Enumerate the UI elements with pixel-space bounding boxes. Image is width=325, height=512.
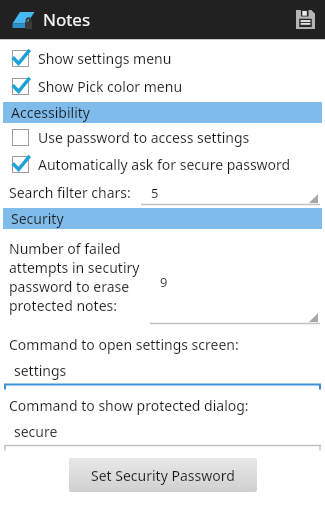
staticText: Number of failed attempts in secutiry pa… xyxy=(9,239,150,315)
button[interactable]: Save xyxy=(285,0,325,39)
staticText: Accessibility xyxy=(11,103,90,122)
staticText: Show settings menu xyxy=(38,49,172,68)
staticText: Command to show protected dialog: xyxy=(9,396,249,415)
button[interactable]: Show Pick color menu xyxy=(0,74,325,98)
button[interactable]: Dropdown, value 9 xyxy=(150,239,320,325)
staticText: Set Security Password xyxy=(91,466,235,485)
staticText: Search filter chars: xyxy=(9,183,131,202)
staticText: 9 xyxy=(160,273,168,291)
staticText: Command to open settings screen: xyxy=(9,335,239,354)
staticText: secure xyxy=(14,422,58,441)
staticText: settings xyxy=(14,361,67,380)
button[interactable]: Use password to access settings xyxy=(0,125,325,149)
staticText: Security xyxy=(11,209,64,228)
staticText: Show Pick color menu xyxy=(38,77,183,96)
staticText: Notes xyxy=(43,8,91,31)
button[interactable]: Notes xyxy=(11,7,91,32)
staticText: 5 xyxy=(151,184,159,202)
button[interactable]: Show settings menu xyxy=(0,46,325,70)
staticText: Use password to access settings xyxy=(38,128,250,147)
staticText: Automatically ask for secure password xyxy=(38,155,291,174)
button[interactable]: Set Security Password xyxy=(69,458,257,492)
button[interactable]: Dropdown, value 5 xyxy=(141,179,320,206)
button[interactable]: secure xyxy=(0,418,325,451)
button[interactable]: Automatically ask for secure password xyxy=(0,152,325,176)
button[interactable]: settings xyxy=(0,357,325,390)
